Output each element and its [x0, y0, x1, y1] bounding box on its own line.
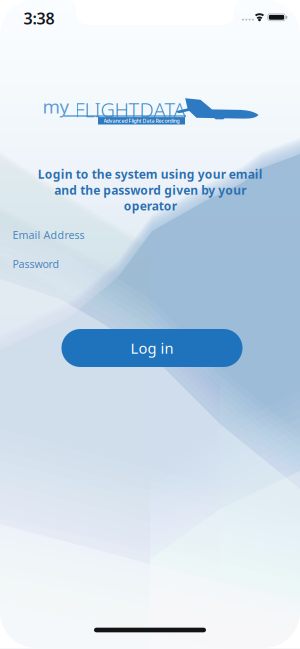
button[interactable]: Log in: [61, 329, 242, 367]
button[interactable]: Password: [0, 250, 300, 278]
staticText: my: [42, 94, 69, 119]
staticText: Advanced Flight Data Recording: [103, 117, 179, 124]
staticText: Login to the system using your email and…: [37, 166, 262, 214]
staticText: Log in: [130, 338, 173, 358]
staticText: Email Address: [12, 228, 84, 242]
button[interactable]: Email Address: [0, 221, 300, 249]
staticText: Password: [12, 257, 59, 271]
staticText: 3:38: [23, 8, 54, 29]
staticText: FLIGHTDATA: [74, 96, 185, 123]
